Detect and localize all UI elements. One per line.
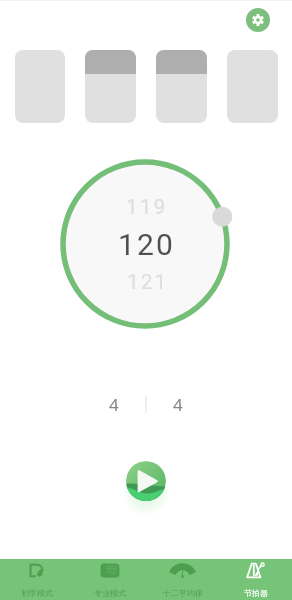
button[interactable]: Settings (246, 8, 270, 32)
button[interactable] (227, 50, 278, 123)
button[interactable] (15, 50, 65, 123)
button[interactable]: 119 (60, 159, 230, 329)
staticText: 十二平均律 (163, 588, 203, 598)
button[interactable]: Play (121, 456, 171, 506)
button[interactable]: 节拍器 (219, 559, 292, 600)
staticText: 4 (173, 393, 183, 416)
staticText: 121 (127, 270, 169, 295)
staticText: 120 (118, 227, 176, 262)
button[interactable]: 十二平均律 (146, 559, 219, 600)
staticText: 初学模式 (21, 588, 53, 598)
staticText: 4 (109, 393, 119, 416)
button[interactable]: 4 (147, 392, 209, 416)
staticText: 节拍器 (244, 588, 268, 598)
button[interactable]: 初学模式 (0, 559, 73, 600)
staticText: 119 (126, 195, 168, 220)
button[interactable] (156, 50, 207, 123)
staticText: 专业模式 (94, 588, 126, 598)
button[interactable] (85, 50, 136, 123)
button[interactable]: 专业模式 (73, 559, 146, 600)
button[interactable]: 4 (83, 392, 145, 416)
